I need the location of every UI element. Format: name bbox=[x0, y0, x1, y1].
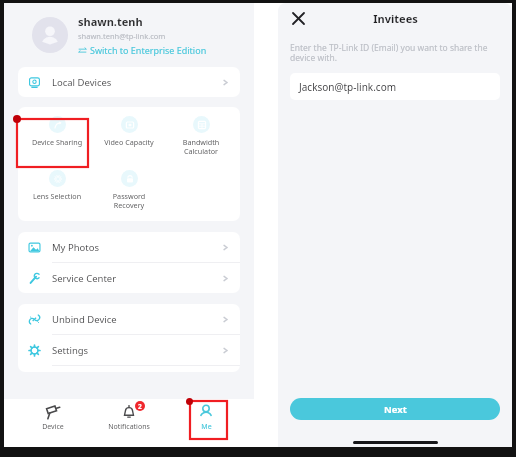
staticText: Local Devices bbox=[52, 76, 221, 89]
button[interactable]: Me bbox=[178, 404, 234, 432]
staticText: Device Sharing bbox=[21, 137, 93, 147]
staticText: Jackson@tp-link.com bbox=[299, 80, 397, 94]
button[interactable]: Device bbox=[25, 404, 81, 432]
staticText: Unbind Device bbox=[52, 313, 221, 326]
staticText: Enter the TP-Link ID (Email) you want to… bbox=[290, 42, 488, 64]
staticText: shawn.tenh bbox=[78, 14, 143, 29]
button[interactable]: My Photos bbox=[18, 232, 240, 263]
staticText: Notifications bbox=[108, 422, 150, 432]
staticText: My Photos bbox=[52, 241, 221, 254]
staticText: Bandwidth Calculator bbox=[165, 137, 237, 156]
staticText: Service Center bbox=[52, 272, 221, 285]
button[interactable]: Jackson@tp-link.com bbox=[290, 73, 500, 100]
button[interactable]: Video Capacity bbox=[93, 113, 165, 161]
button[interactable]: Service Center bbox=[18, 263, 240, 293]
button[interactable]: Close bbox=[288, 8, 308, 28]
button[interactable]: Device Sharing bbox=[21, 113, 93, 161]
staticText: Video Capacity bbox=[93, 137, 165, 147]
staticText: 2 bbox=[138, 402, 142, 411]
staticText: Invitees bbox=[373, 11, 418, 26]
button[interactable]: Unbind Device bbox=[18, 304, 240, 335]
button[interactable]: Local Devices bbox=[18, 67, 240, 97]
staticText: Lens Selection bbox=[21, 191, 93, 201]
staticText: Settings bbox=[52, 344, 221, 357]
staticText: Device bbox=[42, 422, 64, 432]
staticText: Switch to Enterprise Edition bbox=[90, 44, 207, 56]
staticText: Password Recovery bbox=[93, 191, 165, 210]
button[interactable]: Password Recovery bbox=[93, 167, 165, 215]
button[interactable]: Bandwidth Calculator bbox=[165, 113, 237, 161]
button[interactable]: Lens Selection bbox=[21, 167, 93, 215]
staticText: Me bbox=[201, 422, 212, 432]
staticText: shawn.tenh@tp-link.com bbox=[78, 31, 166, 41]
button[interactable]: Next bbox=[290, 398, 500, 420]
button[interactable]: Settings bbox=[18, 335, 240, 366]
button[interactable]: 2 bbox=[101, 404, 157, 432]
staticText: Next bbox=[384, 403, 407, 416]
